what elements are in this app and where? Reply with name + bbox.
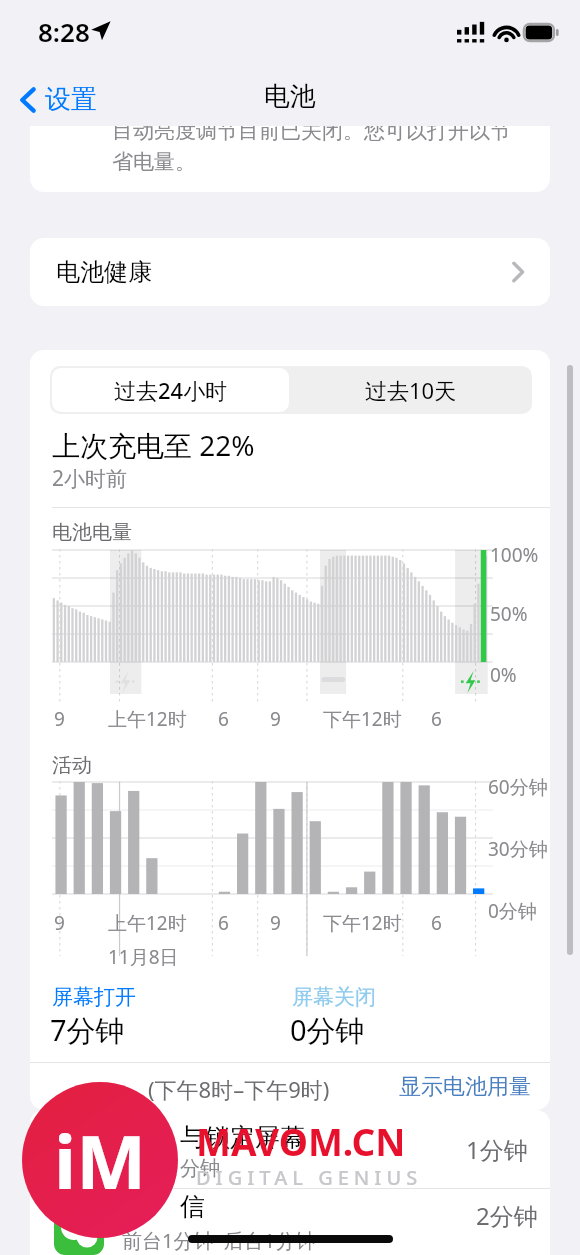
staticText: 9	[270, 910, 281, 936]
staticText: 电池	[264, 80, 316, 113]
staticText: 0分钟	[290, 1010, 365, 1050]
staticText: 30分钟	[488, 836, 548, 862]
staticText: 上午12时	[108, 706, 187, 732]
staticText: 2小时前	[52, 464, 128, 493]
staticText: 2分钟	[476, 1199, 538, 1232]
staticText: 9	[54, 706, 65, 732]
staticText: 8:28	[38, 14, 90, 49]
staticText: 信	[180, 1191, 205, 1222]
staticText: 60分钟	[488, 774, 548, 800]
staticText: 屏幕打开	[52, 984, 136, 1010]
staticText: 过去24小时	[114, 375, 228, 405]
staticText: 目动亮度调节目前已关闭。您可以打开以节 省电量。	[112, 126, 511, 175]
staticText: 过去10天	[365, 375, 457, 405]
other: WeChat	[54, 1205, 104, 1255]
staticText: 显示电池用量	[399, 1073, 531, 1101]
staticText: 电池电量	[52, 520, 132, 545]
staticText: (下午8时–下午9时)	[148, 1074, 330, 1104]
button[interactable]: 过去24小时	[52, 368, 289, 412]
staticText: 下午12时	[323, 706, 402, 732]
staticText: 9	[54, 910, 65, 936]
staticText: 电池健康	[56, 257, 152, 287]
button[interactable]: 显示电池用量	[394, 1066, 536, 1108]
staticText: 分钟	[180, 1156, 220, 1181]
staticText: iM	[54, 1110, 146, 1211]
button[interactable]: 过去10天	[291, 368, 530, 412]
staticText: 6	[218, 706, 229, 732]
staticText: 上次充电至 22%	[52, 426, 255, 464]
button[interactable]: WeChat	[30, 1189, 550, 1255]
staticText: 屏幕关闭	[292, 984, 376, 1010]
staticText: DIGITAL GENIUS	[196, 1164, 423, 1191]
staticText: MAVOM.CN	[196, 1116, 406, 1166]
staticText: 设置	[45, 83, 97, 116]
staticText: 上午12时	[108, 910, 187, 936]
button[interactable]: 与锁定屏幕	[30, 1110, 550, 1188]
staticText: 7分钟	[50, 1010, 125, 1050]
staticText: 前台1分钟 后台1分钟	[122, 1227, 316, 1254]
staticText: 6	[431, 910, 442, 936]
button[interactable]: 电池健康	[30, 238, 550, 306]
staticText: 6	[218, 910, 229, 936]
staticText: 11月8日	[108, 944, 179, 970]
staticText: 9	[270, 706, 281, 732]
staticText: 与锁定屏幕	[180, 1122, 305, 1153]
staticText: 1分钟	[466, 1133, 528, 1166]
staticText: 100%	[490, 542, 539, 568]
staticText: 0分钟	[488, 898, 537, 924]
staticText: 活动	[52, 753, 92, 778]
staticText: 50%	[490, 601, 528, 627]
staticText: 6	[431, 706, 442, 732]
button[interactable]: 设置	[14, 78, 103, 121]
staticText: 下午12时	[323, 910, 402, 936]
staticText: 0%	[490, 662, 517, 688]
